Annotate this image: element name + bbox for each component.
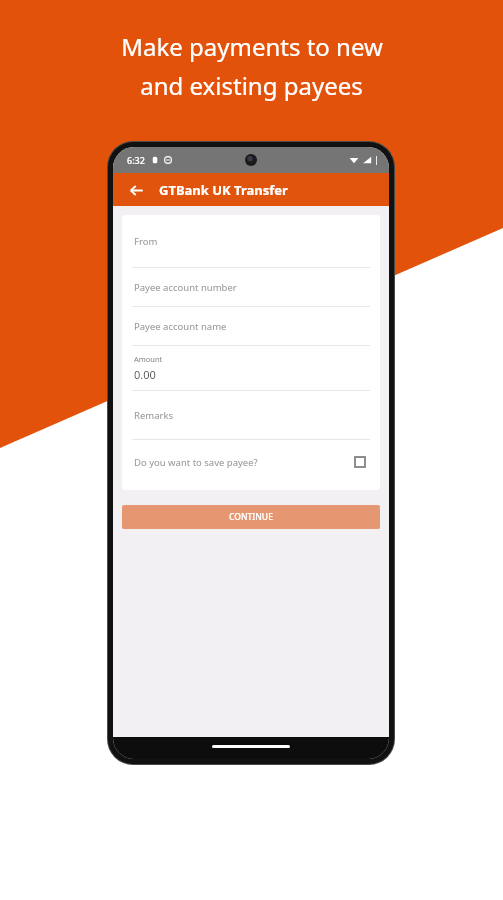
staticText: Amount bbox=[134, 354, 163, 364]
button[interactable]: Back bbox=[121, 175, 151, 205]
staticText: Payee account name bbox=[134, 320, 227, 333]
button[interactable]: Do you want to save payee? bbox=[122, 440, 380, 484]
button[interactable]: From bbox=[122, 215, 380, 267]
staticText: From bbox=[134, 235, 158, 248]
button[interactable]: Payee account number bbox=[122, 268, 380, 306]
staticText: 6:32 bbox=[127, 154, 145, 166]
staticText: Payee account number bbox=[134, 281, 237, 294]
staticText: Do you want to save payee? bbox=[134, 456, 258, 469]
staticText: CONTINUE bbox=[229, 511, 273, 523]
staticText: Make payments to new bbox=[121, 30, 383, 63]
staticText: GTBank UK Transfer bbox=[159, 181, 288, 199]
button[interactable]: Payee account name bbox=[122, 307, 380, 345]
button[interactable]: Amount bbox=[122, 346, 380, 390]
staticText: 0.00 bbox=[134, 367, 156, 382]
staticText: and existing payees bbox=[140, 69, 363, 102]
button[interactable]: Remarks bbox=[122, 391, 380, 439]
button[interactable]: CONTINUE bbox=[122, 505, 380, 529]
staticText: Remarks bbox=[134, 409, 174, 422]
